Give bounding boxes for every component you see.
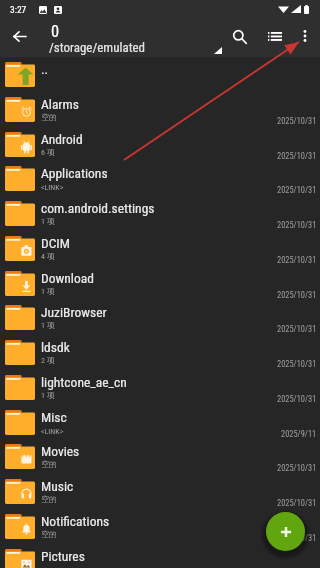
staticText: Applications [41, 165, 108, 181]
button[interactable]: Pictures [0, 544, 320, 568]
button[interactable]: Android [0, 127, 320, 162]
button[interactable]: Search [227, 24, 252, 49]
staticText: .. [41, 61, 49, 77]
button[interactable]: Back [7, 24, 32, 49]
staticText: Music [41, 478, 74, 494]
button[interactable]: .. [0, 57, 320, 92]
staticText: 3:27 [10, 4, 27, 15]
button[interactable]: Music [0, 474, 320, 509]
staticText: 空的 [41, 112, 57, 122]
staticText: 2025/10/31 [277, 394, 317, 404]
staticText: 2025/10/31 [277, 255, 317, 265]
staticText: 1 项 [41, 320, 55, 330]
staticText: lightcone_ae_cn [41, 374, 127, 390]
button[interactable]: Movies [0, 439, 320, 474]
staticText: 2025/10/31 [277, 116, 317, 126]
button[interactable]: ldsdk [0, 335, 320, 370]
staticText: Notifications [41, 513, 110, 529]
button[interactable]: lightcone_ae_cn [0, 370, 320, 405]
staticText: 2025/10/31 [277, 151, 317, 161]
staticText: 2025/10/31 [277, 533, 317, 543]
staticText: 2025/10/31 [277, 220, 317, 230]
staticText: Movies [41, 443, 80, 459]
button[interactable]: View mode [262, 23, 287, 48]
staticText: 1 项 [41, 286, 55, 296]
staticText: 2 项 [41, 355, 55, 365]
staticText: 0 [51, 22, 60, 41]
staticText: 1 项 [41, 216, 55, 226]
staticText: ldsdk [41, 339, 70, 355]
staticText: Android [41, 131, 83, 147]
button[interactable]: Applications [0, 161, 320, 196]
staticText: <LINK> [41, 183, 64, 192]
staticText: 2025/10/31 [277, 463, 317, 473]
staticText: 4 项 [41, 251, 55, 261]
staticText: Download [41, 270, 94, 286]
staticText: 2025/10/31 [277, 324, 317, 334]
staticText: 2025/10/31 [277, 290, 317, 300]
button[interactable]: Download [0, 266, 320, 301]
staticText: 2025/10/31 [277, 498, 317, 508]
staticText: /storage/emulated [49, 40, 146, 55]
button[interactable]: Notifications [0, 509, 320, 544]
staticText: DCIM [41, 235, 70, 251]
button[interactable]: Alarms [0, 92, 320, 127]
button[interactable]: JuziBrowser [0, 300, 320, 335]
staticText: <LINK> [41, 427, 64, 436]
staticText: Alarms [41, 96, 79, 112]
staticText: 空的 [41, 459, 57, 469]
button[interactable]: Add [266, 512, 305, 551]
staticText: com.android.settings [41, 200, 155, 216]
staticText: JuziBrowser [41, 304, 107, 320]
staticText: 2025/9/11 [281, 429, 317, 439]
staticText: 空的 [41, 494, 57, 504]
button[interactable]: More options [292, 23, 317, 48]
staticText: Pictures [41, 548, 85, 564]
staticText: 2025/10/31 [277, 359, 317, 369]
staticText: 2025/10/31 [277, 185, 317, 195]
staticText: 空的 [41, 529, 57, 539]
staticText: 1 项 [41, 390, 55, 400]
button[interactable]: com.android.settings [0, 196, 320, 231]
button[interactable]: DCIM [0, 231, 320, 266]
button[interactable]: Misc [0, 405, 320, 440]
staticText: Misc [41, 409, 67, 425]
staticText: 6 项 [41, 147, 55, 157]
